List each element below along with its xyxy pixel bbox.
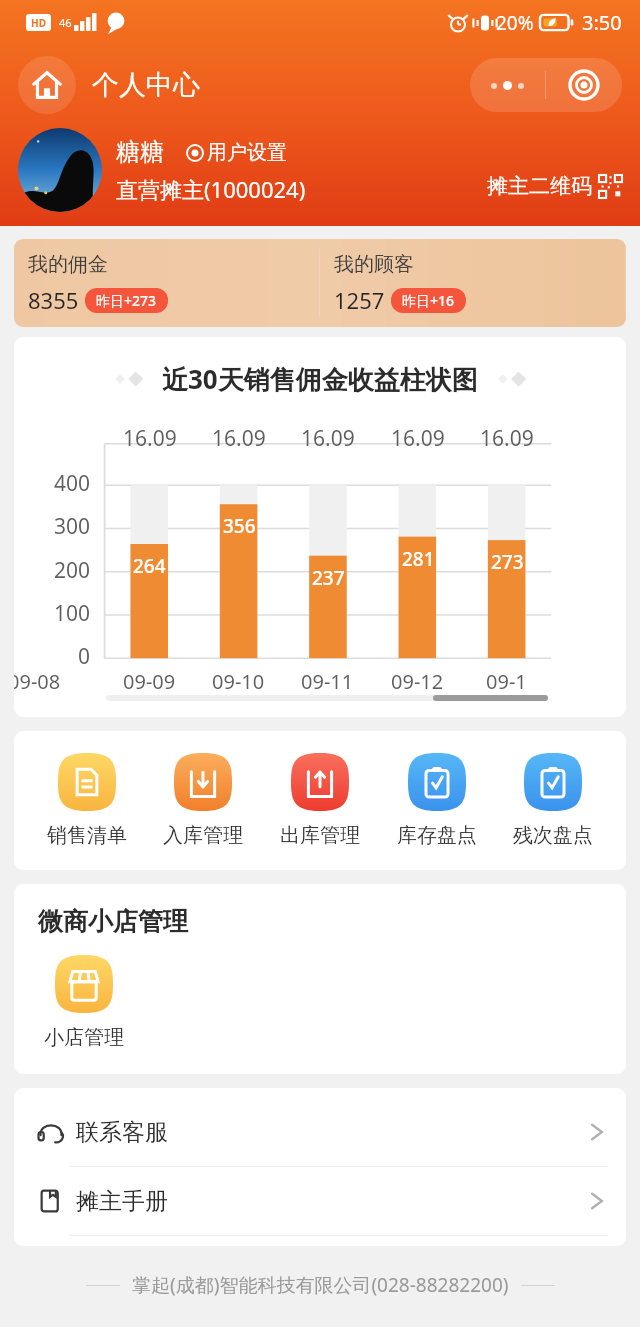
button[interactable]: 入库管理 [159, 753, 247, 848]
staticText: 用户设置 [207, 140, 287, 165]
button[interactable]: 摊主手册 [14, 1167, 626, 1235]
button[interactable]: 我的顾客 [320, 239, 625, 327]
button[interactable]: Scan [546, 58, 622, 112]
staticText: 09-10 [212, 668, 265, 695]
staticText: 出库管理 [280, 823, 360, 848]
staticText: 273 [491, 549, 524, 575]
staticText: 100 [54, 599, 91, 628]
staticText: 09-09 [123, 668, 176, 695]
staticText: 264 [133, 553, 166, 579]
staticText: 3:50 [582, 9, 622, 36]
staticText: HD [31, 16, 46, 30]
staticText: 直营摊主(1000024) [116, 174, 306, 204]
staticText: 昨日+16 [402, 291, 455, 310]
staticText: 46 [59, 15, 72, 30]
staticText: 16.09 [480, 424, 534, 453]
staticText: 摊主手册 [76, 1187, 168, 1216]
staticText: 入库管理 [163, 823, 243, 848]
staticText: 356 [223, 513, 256, 539]
button[interactable]: 销售清单 [43, 753, 131, 848]
staticText: 销售清单 [47, 823, 127, 848]
staticText: 20% [496, 10, 534, 36]
staticText: 近30天销售佣金收益柱状图 [162, 361, 478, 397]
staticText: 昨日+273 [96, 291, 157, 310]
button[interactable]: 摊主二维码 [487, 173, 622, 199]
button[interactable]: Home [18, 56, 76, 114]
staticText: 摊主二维码 [487, 173, 592, 199]
staticText: 300 [54, 512, 91, 541]
staticText: 237 [312, 565, 345, 591]
staticText: 我的佣金 [28, 252, 108, 277]
button[interactable]: 我的佣金 [14, 239, 319, 327]
button[interactable]: More options [470, 58, 545, 112]
staticText: 我的顾客 [334, 252, 414, 277]
staticText: 1257 [334, 285, 385, 315]
staticText: 残次盘点 [513, 823, 593, 848]
staticText: 16.09 [212, 424, 266, 453]
staticText: 库存盘点 [397, 823, 477, 848]
staticText: 400 [54, 469, 91, 498]
staticText: 联系客服 [76, 1118, 168, 1147]
button[interactable]: 联系客服 [14, 1098, 626, 1166]
staticText: 09-12 [391, 668, 444, 695]
staticText: 281 [402, 546, 435, 572]
staticText: 掌起(成都)智能科技有限公司(028-88282200) [132, 1272, 509, 1298]
staticText: 微商小店管理 [38, 906, 188, 937]
staticText: 糖糖 [116, 137, 164, 167]
button[interactable]: 库存盘点 [393, 753, 481, 848]
button[interactable]: 小店管理 [38, 955, 130, 1050]
staticText: 个人中心 [92, 68, 200, 102]
staticText: 0 [78, 642, 91, 671]
staticText: 09-08 [14, 668, 61, 695]
staticText: 09-11 [301, 668, 354, 695]
staticText: 8355 [28, 285, 79, 315]
button[interactable]: 出库管理 [276, 753, 364, 848]
staticText: 09-1 [486, 668, 527, 695]
staticText: 16.09 [391, 424, 445, 453]
staticText: 小店管理 [44, 1025, 124, 1050]
button[interactable]: 用户设置 [186, 140, 287, 165]
staticText: 200 [54, 556, 91, 585]
staticText: 16.09 [301, 424, 355, 453]
staticText: 16.09 [123, 424, 177, 453]
button[interactable]: 残次盘点 [509, 753, 597, 848]
